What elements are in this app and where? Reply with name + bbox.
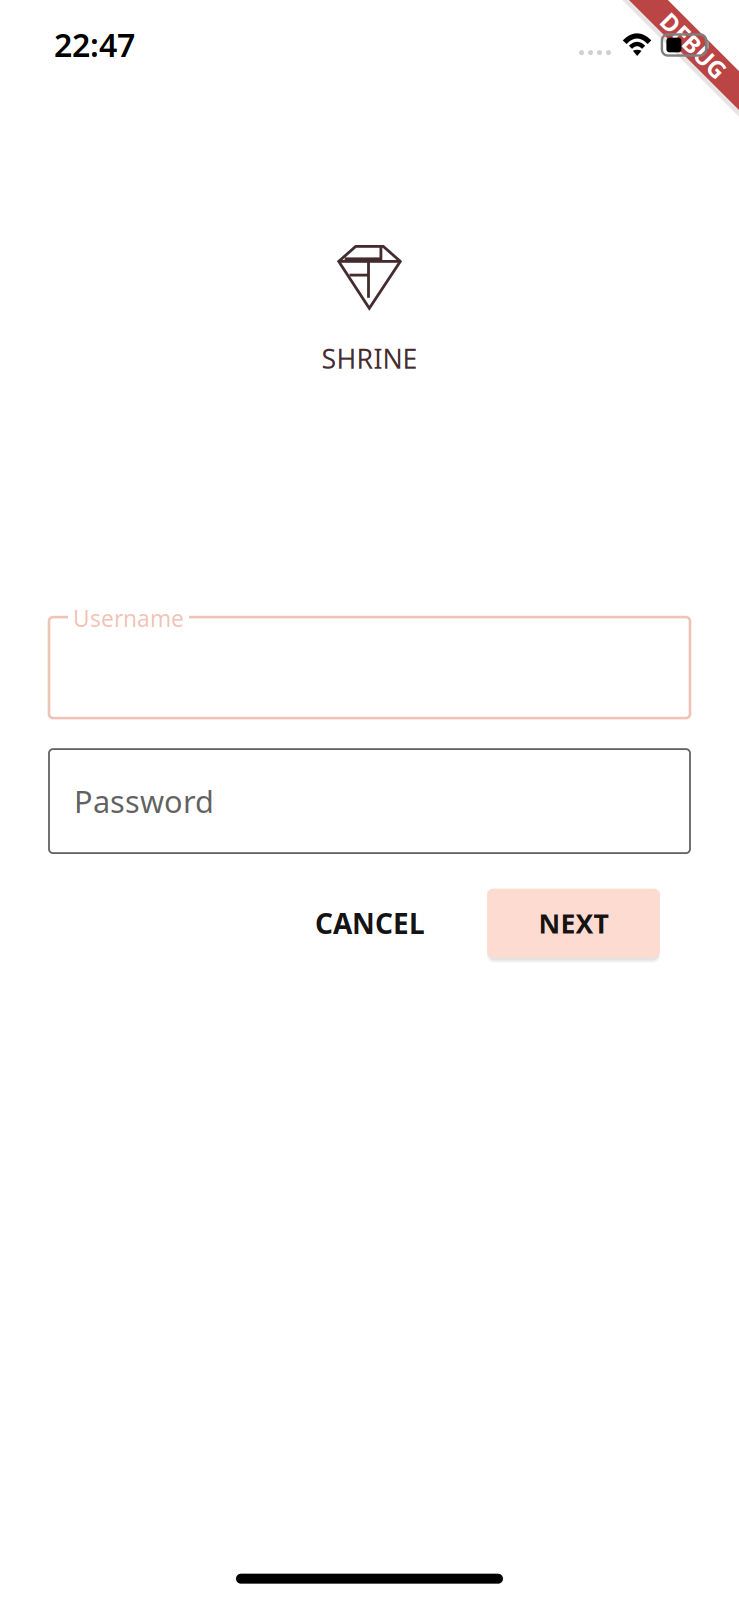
staticText: DEBUG <box>653 29 735 61</box>
button[interactable]: NEXT <box>487 884 660 962</box>
staticText: SHRINE <box>321 341 417 376</box>
staticText: 22:47 <box>54 23 135 66</box>
staticText: CANCEL <box>315 904 425 942</box>
button[interactable]: CANCEL <box>285 889 455 958</box>
staticText: NEXT <box>538 905 608 941</box>
staticText: Password <box>74 781 214 821</box>
staticText: Username <box>73 603 184 633</box>
